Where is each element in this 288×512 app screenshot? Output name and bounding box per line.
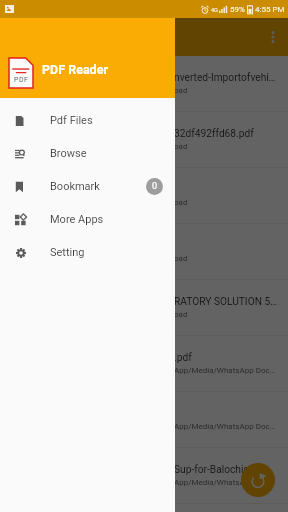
button[interactable]: .pdf bbox=[0, 336, 288, 391]
staticText: 32df492ffd68.pdf bbox=[174, 128, 254, 140]
staticText: App/Media/WhatsApp Documents/abc bbox=[174, 422, 277, 431]
staticText: PDF Reader bbox=[42, 62, 108, 77]
staticText: App/Media/WhatsApp Docu bbox=[174, 478, 275, 487]
staticText: .pdf bbox=[174, 352, 192, 364]
staticText: oad bbox=[174, 142, 188, 151]
staticText: Browse bbox=[50, 147, 87, 160]
staticText: Sup-for-Balochistan-Package.pdf bbox=[174, 464, 277, 476]
staticText: More Apps bbox=[50, 213, 104, 226]
button[interactable]: nverted-Importofvehiclesinpakistan.pdf bbox=[0, 56, 288, 111]
staticText: PDF bbox=[14, 76, 29, 84]
button[interactable]: Bookmark bbox=[0, 170, 175, 203]
staticText: Bookmark bbox=[50, 180, 100, 193]
staticText: 0 bbox=[152, 181, 158, 192]
button[interactable]: RATORY SOLUTION 502 revised final.pdf bbox=[0, 280, 288, 335]
staticText: nverted-Importofvehiclesinpakistan.pdf bbox=[174, 72, 277, 84]
button[interactable]: Setting bbox=[0, 236, 175, 269]
button[interactable]: oad bbox=[0, 168, 288, 223]
staticText: RATORY SOLUTION 502 revised final.pdf bbox=[174, 296, 277, 308]
button[interactable]: More Apps bbox=[0, 203, 175, 236]
button[interactable]: oad bbox=[0, 224, 288, 279]
button[interactable]: More options bbox=[261, 25, 285, 49]
staticText: oad bbox=[174, 254, 188, 263]
button[interactable]: App/Media/WhatsApp Documents/abc bbox=[0, 392, 288, 447]
staticText: oad bbox=[174, 310, 188, 319]
staticText: 4G bbox=[211, 7, 218, 13]
staticText: oad bbox=[174, 198, 188, 207]
staticText: 4:55 PM bbox=[255, 5, 285, 14]
staticText: Setting bbox=[50, 246, 85, 259]
button[interactable]: Sup-for-Balochistan-Package.pdf bbox=[0, 448, 288, 503]
button[interactable]: Refresh bbox=[241, 463, 275, 497]
button[interactable]: 32df492ffd68.pdf bbox=[0, 112, 288, 167]
staticText: 59% bbox=[230, 5, 245, 14]
staticText: oad bbox=[174, 86, 188, 95]
staticText: Pdf Files bbox=[50, 114, 93, 127]
staticText: App/Media/WhatsApp Documents/abc bbox=[174, 366, 277, 375]
button[interactable]: Pdf Files bbox=[0, 104, 175, 137]
button[interactable]: Browse bbox=[0, 137, 175, 170]
